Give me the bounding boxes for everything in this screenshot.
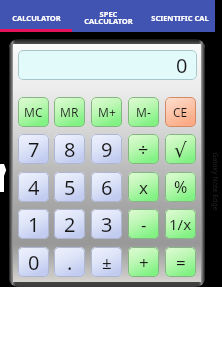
staticText: ±	[102, 251, 112, 274]
staticText: +	[139, 251, 149, 274]
button[interactable]: M+	[91, 97, 122, 127]
button[interactable]: 9	[91, 134, 122, 164]
button[interactable]: 6	[91, 172, 122, 202]
button[interactable]: MC	[18, 97, 49, 127]
staticText: √	[174, 138, 187, 161]
button[interactable]: SPEC CALCULATOR	[72, 0, 144, 29]
staticText: 2	[64, 211, 76, 238]
button[interactable]: -	[128, 209, 159, 239]
button[interactable]: ±	[91, 247, 122, 277]
staticText: 0	[176, 52, 188, 79]
button[interactable]: CE	[165, 97, 196, 127]
staticText: 1	[28, 211, 40, 238]
button[interactable]: 1	[18, 209, 49, 239]
staticText: 3	[101, 211, 113, 238]
button[interactable]: SCIENTIFIC CAL	[144, 0, 215, 29]
staticText: Galaxy Note Edge	[209, 152, 219, 211]
button[interactable]: 1/x	[165, 209, 196, 239]
staticText: 1/x	[169, 214, 192, 234]
staticText: x	[139, 176, 148, 199]
staticText: M-	[136, 104, 151, 120]
staticText: 8	[64, 136, 76, 163]
button[interactable]: 5	[54, 172, 85, 202]
staticText: -	[141, 213, 147, 236]
button[interactable]: +	[128, 247, 159, 277]
staticText: 7	[28, 136, 40, 163]
staticText: M+	[98, 104, 116, 120]
staticText: %	[174, 176, 188, 198]
staticText: CALCULATOR	[12, 13, 61, 23]
button[interactable]: 4	[18, 172, 49, 202]
staticText: CE	[173, 104, 188, 120]
staticText: MR	[60, 104, 79, 120]
staticText: =	[176, 251, 186, 274]
staticText: 5	[64, 174, 76, 201]
button[interactable]: x	[128, 172, 159, 202]
button[interactable]: 2	[54, 209, 85, 239]
button[interactable]: 8	[54, 134, 85, 164]
button[interactable]: 0	[18, 247, 49, 277]
staticText: 6	[101, 174, 113, 201]
button[interactable]: 7	[18, 134, 49, 164]
staticText: SPEC CALCULATOR	[84, 9, 133, 27]
staticText: SCIENTIFIC CAL	[151, 13, 209, 23]
staticText: 9	[101, 136, 113, 163]
staticText: ÷	[138, 137, 149, 162]
staticText: 4	[28, 174, 40, 201]
button[interactable]: M-	[128, 97, 159, 127]
button[interactable]: .	[54, 247, 85, 277]
button[interactable]: %	[165, 172, 196, 202]
button[interactable]: MR	[54, 97, 85, 127]
staticText: 0	[28, 249, 40, 276]
button[interactable]: 3	[91, 209, 122, 239]
staticText: .	[67, 249, 73, 276]
button[interactable]: =	[165, 247, 196, 277]
button[interactable]: √	[165, 134, 196, 164]
staticText: MC	[24, 104, 43, 120]
button[interactable]: ÷	[128, 134, 159, 164]
button[interactable]: CALCULATOR	[0, 0, 72, 29]
